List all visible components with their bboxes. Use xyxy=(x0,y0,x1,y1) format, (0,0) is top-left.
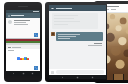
button[interactable] xyxy=(51,32,103,41)
button[interactable] xyxy=(52,13,98,29)
button[interactable] xyxy=(104,74,113,80)
button[interactable]: Split screen xyxy=(34,33,38,37)
button[interactable]: Back xyxy=(61,76,64,79)
button[interactable]: Split screen xyxy=(34,66,38,70)
button[interactable] xyxy=(95,74,103,80)
button[interactable]: Home xyxy=(22,72,25,75)
button[interactable] xyxy=(6,45,40,49)
button[interactable]: Home xyxy=(76,76,79,79)
button[interactable] xyxy=(6,18,40,33)
button[interactable]: Recent apps xyxy=(31,72,34,75)
button[interactable]: Back xyxy=(12,72,15,75)
button[interactable] xyxy=(95,13,128,74)
button[interactable]: Back xyxy=(6,13,40,18)
button[interactable]: Recent apps xyxy=(91,76,94,79)
button[interactable]: Navigate up xyxy=(49,5,106,11)
button[interactable]: Navigate up xyxy=(51,7,54,10)
button[interactable]: Attach xyxy=(49,69,106,75)
